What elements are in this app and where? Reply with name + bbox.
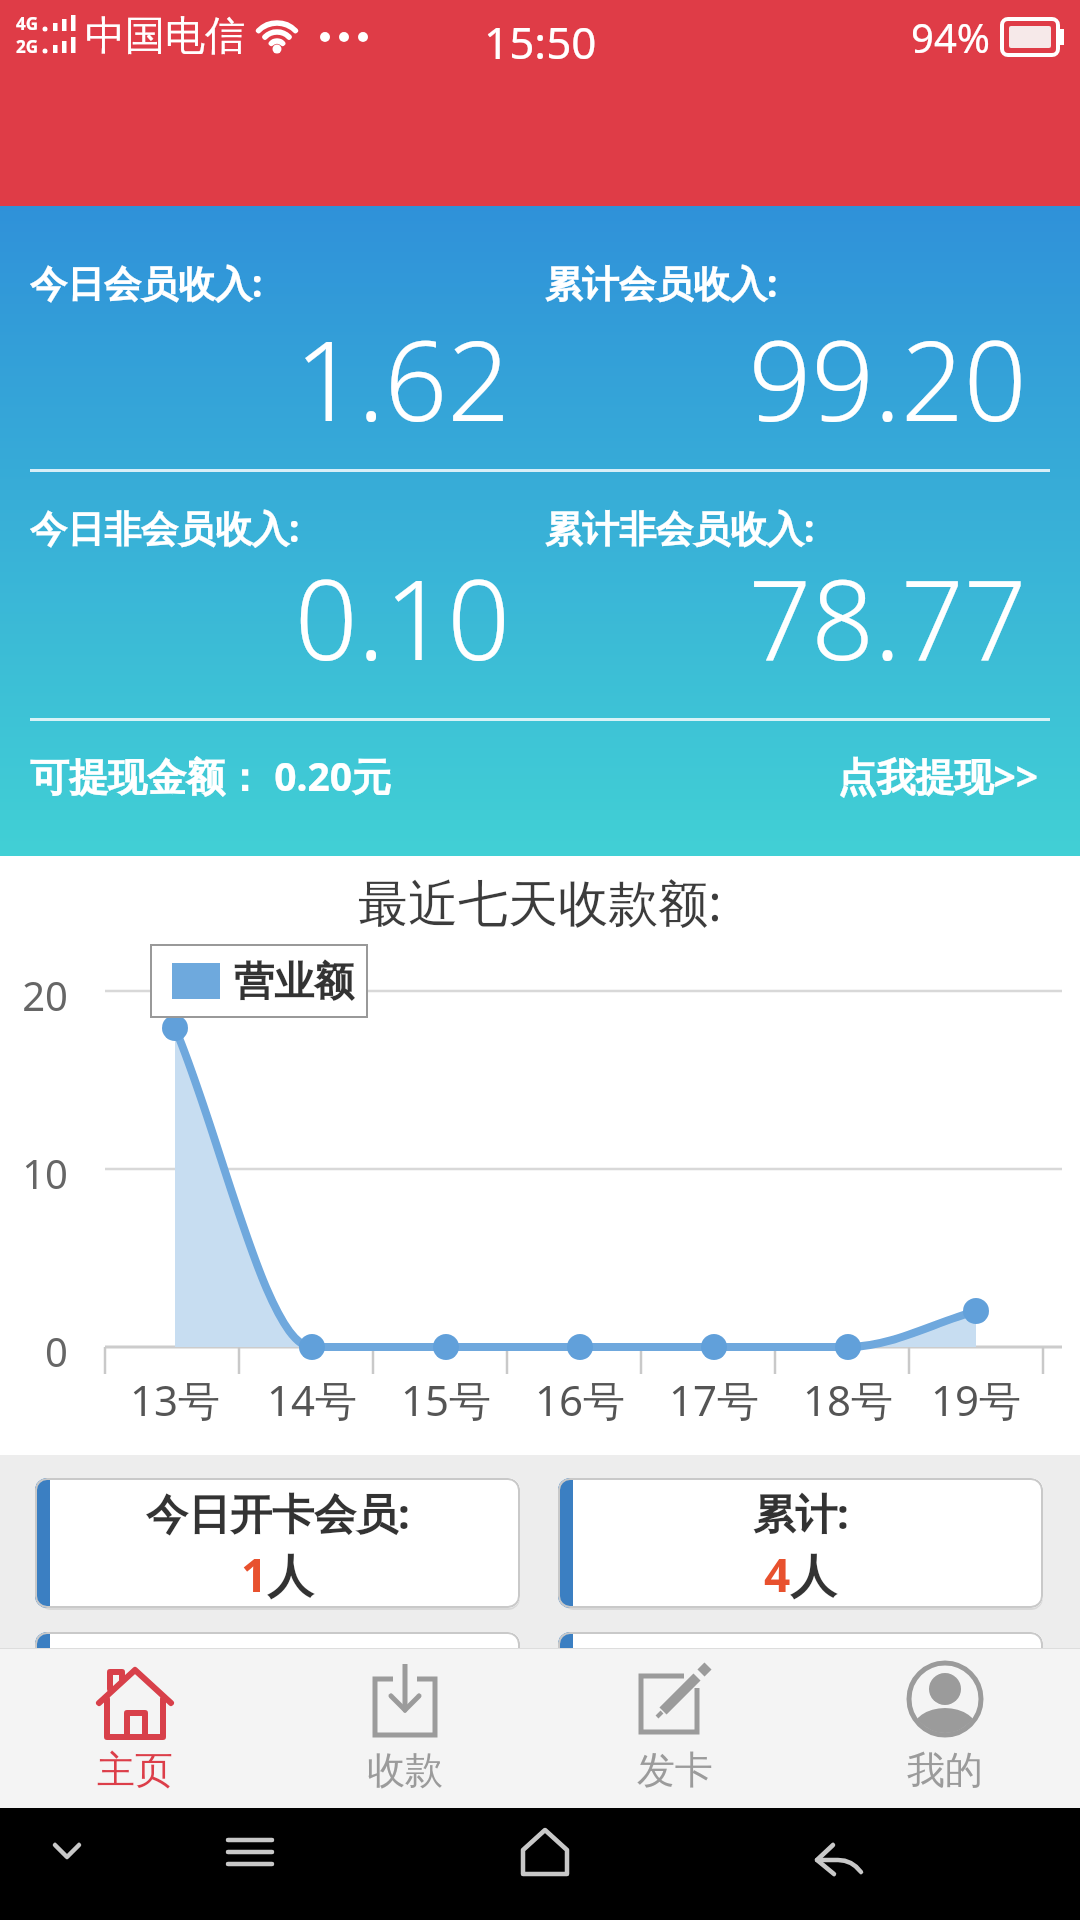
staticText: 今日非会员收入:: [30, 502, 300, 553]
staticText: 我的: [907, 1746, 983, 1794]
staticText: 78.77: [635, 542, 1080, 692]
staticText: 累计:: [753, 1484, 849, 1541]
button[interactable]: [515, 1823, 575, 1883]
staticText: 20: [0, 968, 68, 1022]
button[interactable]: 我的: [810, 1648, 1080, 1808]
staticText: 收款: [367, 1746, 443, 1794]
staticText: 1人: [241, 1543, 314, 1606]
staticText: 15:50: [484, 12, 597, 72]
button[interactable]: 点我提现>>: [0, 749, 1038, 802]
staticText: 0: [0, 1324, 68, 1378]
staticText: 中国电信: [85, 10, 245, 60]
staticText: 15号: [379, 1371, 513, 1428]
staticText: 1.62: [150, 303, 655, 453]
staticText: 4G: [16, 12, 39, 35]
button[interactable]: 今日开卡会员:: [35, 1478, 520, 1608]
staticText: 2G: [16, 35, 39, 58]
staticText: 13号: [108, 1371, 242, 1428]
staticText: 14号: [245, 1371, 379, 1428]
staticText: 99.20: [635, 303, 1080, 453]
staticText: 主页: [97, 1746, 173, 1794]
button[interactable]: 主页: [0, 1648, 270, 1808]
staticText: 今日会员收入:: [30, 257, 263, 308]
staticText: 17号: [647, 1371, 781, 1428]
staticText: 累计非会员收入:: [545, 502, 815, 553]
button[interactable]: [35, 1632, 520, 1648]
staticText: 94%: [911, 10, 990, 64]
staticText: 4人: [764, 1543, 837, 1606]
staticText: 10: [0, 1146, 68, 1200]
staticText: 0.10: [150, 542, 655, 692]
button[interactable]: 收款: [270, 1648, 540, 1808]
staticText: 最近七天收款额:: [0, 868, 1080, 936]
staticText: 16号: [513, 1371, 647, 1428]
button[interactable]: [810, 1828, 870, 1883]
button[interactable]: 发卡: [540, 1648, 810, 1808]
staticText: 可提现金额： 0.20元: [30, 749, 392, 802]
button[interactable]: [558, 1632, 1043, 1648]
staticText: 19号: [909, 1371, 1043, 1428]
staticText: 发卡: [637, 1746, 713, 1794]
staticText: 累计会员收入:: [545, 257, 778, 308]
button[interactable]: [40, 1828, 95, 1883]
staticText: 营业额: [234, 956, 354, 1006]
staticText: 18号: [781, 1371, 915, 1428]
button[interactable]: [222, 1828, 282, 1883]
staticText: 今日开卡会员:: [146, 1484, 410, 1541]
button[interactable]: 累计:: [558, 1478, 1043, 1608]
